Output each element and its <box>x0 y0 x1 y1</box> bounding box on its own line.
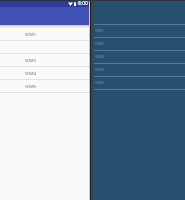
other: Battery <box>74 2 76 6</box>
button[interactable]: VIEW2 <box>94 38 185 50</box>
other: Wi-Fi <box>68 2 73 6</box>
button[interactable]: VIEW4 <box>0 67 89 80</box>
staticText: VIEW2 <box>95 42 104 46</box>
button[interactable]: VIEW5 <box>94 77 185 89</box>
staticText: VIEW1 <box>25 32 37 37</box>
button[interactable]: VIEW3 <box>0 54 89 67</box>
staticText: 8:00 <box>78 0 88 7</box>
staticText: VIEW1 <box>95 29 104 33</box>
button[interactable]: VIEW1 <box>0 28 89 41</box>
button[interactable] <box>0 41 89 54</box>
staticText: VIEW3 <box>95 55 104 59</box>
button[interactable]: VIEW3 <box>94 51 185 63</box>
button[interactable]: VIEW1 <box>94 25 185 37</box>
staticText: VIEW5 <box>25 84 37 89</box>
staticText: VIEW5 <box>95 81 104 85</box>
staticText: VIEW3 <box>25 58 37 63</box>
button[interactable]: VIEW4 <box>94 64 185 76</box>
button[interactable]: VIEW5 <box>0 80 89 93</box>
staticText: VIEW4 <box>25 71 37 76</box>
staticText: VIEW4 <box>95 68 104 72</box>
